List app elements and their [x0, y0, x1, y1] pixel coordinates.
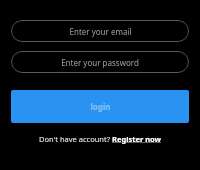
button[interactable]: Enter your password: [11, 51, 189, 73]
staticText: Enter your password: [61, 57, 139, 68]
button[interactable]: Register now: [112, 134, 162, 144]
staticText: Enter your email: [69, 26, 132, 37]
button[interactable]: login: [11, 90, 189, 123]
staticText: Don't have account?: [39, 134, 112, 144]
staticText: login: [90, 101, 111, 112]
staticText: Register now: [112, 134, 162, 144]
button[interactable]: Enter your email: [11, 20, 189, 42]
